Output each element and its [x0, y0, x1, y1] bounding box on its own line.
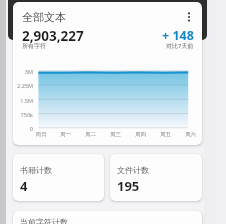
- staticText: 0: [13, 125, 33, 132]
- staticText: 2.25M: [13, 82, 33, 89]
- button[interactable]: 当前字符计数: [13, 211, 202, 224]
- button[interactable]: More options: [182, 10, 196, 24]
- staticText: 周日: [29, 131, 53, 138]
- staticText: 书籍计数: [20, 165, 52, 175]
- staticText: 周二: [78, 131, 103, 138]
- staticText: 所有字符: [22, 42, 46, 50]
- staticText: 周五: [153, 131, 178, 138]
- staticText: 3M: [13, 68, 33, 75]
- button[interactable]: 文件计数: [110, 154, 202, 201]
- staticText: 当前字符计数: [20, 217, 68, 224]
- staticText: 2,903,227: [22, 27, 84, 45]
- staticText: 195: [117, 177, 140, 195]
- staticText: 周三: [103, 131, 128, 138]
- staticText: 全部文本: [22, 10, 66, 24]
- staticText: 周一: [53, 131, 78, 138]
- button[interactable]: 全部文本: [13, 2, 202, 145]
- staticText: 1.5M: [13, 97, 33, 104]
- staticText: 750k: [13, 111, 33, 118]
- staticText: 周四: [128, 131, 153, 138]
- button[interactable]: 书籍计数: [13, 154, 104, 201]
- staticText: 周六: [178, 131, 202, 138]
- staticText: 4: [20, 177, 28, 195]
- staticText: + 148: [162, 27, 194, 44]
- staticText: 对比7天前: [166, 42, 194, 50]
- staticText: 文件计数: [117, 165, 149, 175]
